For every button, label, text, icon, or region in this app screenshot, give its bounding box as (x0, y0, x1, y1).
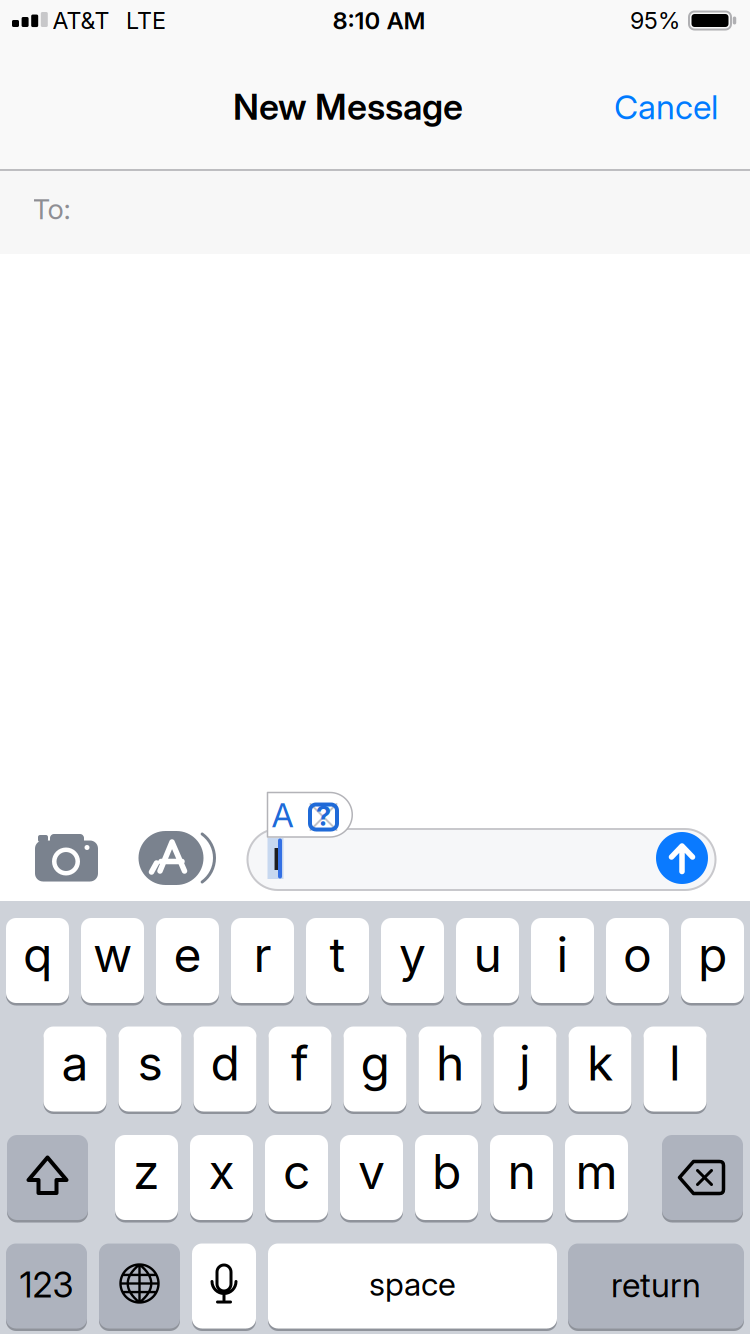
staticText: q (23, 925, 52, 984)
button[interactable]: j (493, 1026, 556, 1111)
button[interactable]: 123 (6, 1243, 87, 1328)
button[interactable]: Camera (21, 823, 111, 893)
staticText: y (399, 925, 426, 984)
staticText: r (253, 925, 271, 984)
button[interactable]: Message (246, 828, 716, 891)
staticText: a (61, 1034, 88, 1092)
staticText: New Message (233, 86, 463, 128)
button[interactable]: u (456, 918, 519, 1003)
button[interactable]: Send (656, 832, 708, 884)
button[interactable]: Next keyboard (99, 1243, 180, 1328)
staticText: w (93, 925, 132, 984)
button[interactable]: i (531, 918, 594, 1003)
button[interactable]: z (115, 1135, 178, 1220)
button[interactable]: l (643, 1026, 706, 1111)
button[interactable]: To (0, 171, 750, 254)
staticText: 95% (630, 6, 680, 35)
staticText: e (173, 925, 201, 984)
staticText: To: (32, 192, 70, 226)
button[interactable]: b (415, 1135, 478, 1220)
button[interactable]: space (268, 1243, 557, 1328)
staticText: u (473, 925, 501, 984)
button[interactable]: return (568, 1243, 744, 1328)
staticText: o (623, 925, 652, 984)
staticText: s (137, 1034, 162, 1092)
staticText: m (575, 1142, 617, 1201)
button[interactable]: o (606, 918, 669, 1003)
staticText: c (283, 1142, 310, 1201)
button[interactable]: f (268, 1026, 331, 1111)
staticText: n (507, 1142, 535, 1201)
button[interactable]: t (306, 918, 369, 1003)
staticText: ? (316, 800, 331, 832)
staticText: l (669, 1034, 681, 1092)
staticText: z (133, 1142, 160, 1201)
button[interactable]: x (190, 1135, 253, 1220)
button[interactable]: p (681, 918, 744, 1003)
staticText: t (329, 925, 345, 984)
button[interactable]: c (265, 1135, 328, 1220)
button[interactable]: iMessage apps (138, 831, 203, 885)
staticText: f (291, 1034, 309, 1092)
button[interactable]: h (418, 1026, 481, 1111)
button[interactable]: k (568, 1026, 631, 1111)
button[interactable]: a (43, 1026, 106, 1111)
staticText: AT&T (52, 6, 109, 35)
staticText: Cancel (614, 87, 718, 127)
button[interactable]: d (193, 1026, 256, 1111)
staticText: A (271, 795, 293, 835)
staticText: v (358, 1142, 385, 1201)
staticText: h (436, 1034, 464, 1092)
button[interactable]: Delete (662, 1135, 743, 1220)
button[interactable]: g (343, 1026, 406, 1111)
button[interactable]: Shift (7, 1135, 88, 1220)
staticText: k (587, 1034, 613, 1092)
staticText: 8:10 AM (332, 6, 425, 35)
button[interactable]: Dictate (192, 1243, 256, 1328)
staticText: x (208, 1142, 234, 1201)
button[interactable]: w (81, 918, 144, 1003)
button[interactable]: Cancel (0, 0, 750, 1334)
button[interactable]: e (156, 918, 219, 1003)
button[interactable]: n (490, 1135, 553, 1220)
staticText: b (432, 1142, 461, 1201)
button[interactable]: s (118, 1026, 181, 1111)
button[interactable]: v (340, 1135, 403, 1220)
staticText: 123 (19, 1264, 73, 1306)
staticText: i (556, 925, 568, 984)
staticText: p (698, 925, 727, 984)
staticText: return (611, 1265, 701, 1305)
staticText: g (360, 1034, 389, 1092)
staticText: space (369, 1265, 456, 1303)
staticText: d (210, 1034, 239, 1092)
button[interactable]: q (6, 918, 69, 1003)
button[interactable]: r (231, 918, 294, 1003)
staticText: LTE (126, 6, 166, 35)
staticText: j (519, 1034, 531, 1092)
button[interactable]: m (565, 1135, 628, 1220)
button[interactable]: y (381, 918, 444, 1003)
